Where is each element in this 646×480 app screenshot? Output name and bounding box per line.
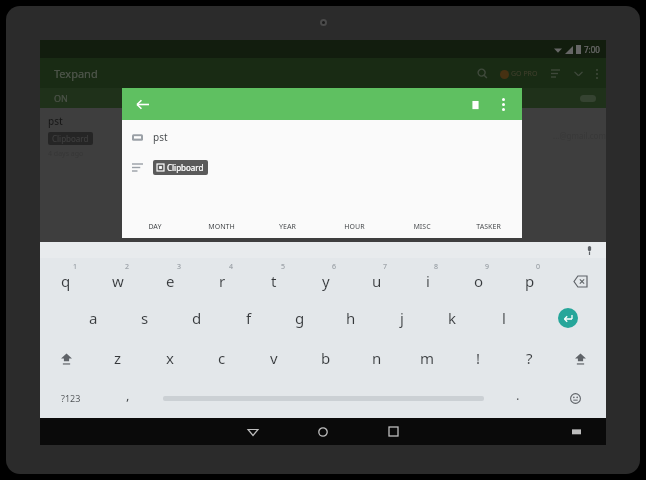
button[interactable]: 6: [300, 258, 351, 298]
staticText: pst: [48, 114, 63, 128]
staticText: n: [372, 348, 382, 368]
staticText: ,: [126, 386, 130, 404]
staticText: x: [166, 348, 174, 368]
staticText: TASKER: [476, 222, 501, 232]
staticText: 5: [281, 262, 286, 272]
button[interactable]: Back: [130, 92, 154, 116]
button[interactable]: Add phrase: [554, 399, 588, 433]
staticText: 7: [383, 262, 388, 272]
staticText: pst: [153, 130, 168, 144]
button[interactable]: YEAR: [254, 216, 321, 238]
button[interactable]: h: [325, 298, 376, 338]
staticText: DAY: [148, 222, 162, 232]
staticText: g: [295, 308, 305, 328]
button[interactable]: !: [453, 338, 504, 378]
staticText: YEAR: [279, 222, 296, 232]
button[interactable]: 1: [40, 258, 92, 298]
button[interactable]: TASKER: [455, 216, 522, 238]
staticText: 3: [177, 262, 182, 272]
staticText: MISC: [413, 222, 431, 232]
staticText: a: [89, 308, 98, 328]
button[interactable]: Space: [154, 378, 492, 418]
staticText: 9: [485, 262, 490, 272]
button[interactable]: z: [92, 338, 144, 378]
button[interactable]: g: [274, 298, 325, 338]
button[interactable]: v: [248, 338, 300, 378]
staticText: v: [270, 348, 278, 368]
button[interactable]: 9: [453, 258, 504, 298]
staticText: Clipboard: [167, 162, 204, 173]
staticText: p: [525, 271, 535, 291]
button[interactable]: 4: [196, 258, 248, 298]
button[interactable]: s: [119, 298, 171, 338]
staticText: e: [166, 271, 175, 291]
staticText: 6: [332, 262, 337, 272]
button[interactable]: Emoji: [544, 378, 606, 418]
button[interactable]: Shift: [40, 338, 92, 378]
button[interactable]: .: [492, 378, 544, 418]
staticText: k: [448, 308, 457, 328]
staticText: GO PRO: [511, 69, 538, 79]
button[interactable]: Enter: [529, 298, 606, 338]
button[interactable]: m: [402, 338, 453, 378]
button[interactable]: x: [144, 338, 196, 378]
button[interactable]: More options: [492, 93, 514, 115]
staticText: h: [346, 308, 356, 328]
staticText: 8: [434, 262, 439, 272]
staticText: 7:00: [584, 44, 600, 55]
button[interactable]: d: [171, 298, 223, 338]
button[interactable]: 5: [248, 258, 300, 298]
staticText: c: [218, 348, 226, 368]
staticText: 4: [229, 262, 234, 272]
button[interactable]: ,: [102, 378, 154, 418]
button[interactable]: 7: [351, 258, 402, 298]
staticText: ?123: [61, 392, 81, 404]
button[interactable]: Delete: [464, 93, 486, 115]
button[interactable]: n: [351, 338, 402, 378]
button[interactable]: 2: [92, 258, 144, 298]
button[interactable]: Hide keyboard: [568, 424, 584, 440]
button[interactable]: l: [478, 298, 529, 338]
button[interactable]: 8: [402, 258, 453, 298]
button[interactable]: k: [427, 298, 478, 338]
button[interactable]: ?: [504, 338, 555, 378]
staticText: .: [516, 386, 520, 404]
button[interactable]: Recent apps: [372, 418, 414, 445]
staticText: r: [219, 271, 226, 291]
button[interactable]: Shift: [555, 338, 606, 378]
staticText: MONTH: [208, 222, 235, 232]
staticText: l: [502, 308, 506, 328]
button[interactable]: b: [300, 338, 351, 378]
staticText: q: [61, 271, 71, 291]
staticText: 1: [73, 262, 78, 272]
staticText: s: [141, 308, 149, 328]
staticText: b: [321, 348, 331, 368]
button[interactable]: Back: [232, 418, 274, 445]
button[interactable]: MONTH: [188, 216, 254, 238]
staticText: 2: [125, 262, 130, 272]
button[interactable]: Clipboard: [153, 160, 208, 175]
button[interactable]: f: [223, 298, 274, 338]
button[interactable]: Home: [302, 418, 344, 445]
button[interactable]: c: [196, 338, 248, 378]
staticText: Clipboard: [52, 133, 89, 144]
staticText: u: [372, 271, 382, 291]
button[interactable]: 0: [504, 258, 555, 298]
button[interactable]: DAY: [122, 216, 188, 238]
button[interactable]: ?123: [40, 378, 102, 418]
staticText: m: [420, 348, 435, 368]
staticText: ON: [54, 92, 68, 104]
button[interactable]: a: [67, 298, 119, 338]
staticText: ?: [526, 348, 533, 368]
button[interactable]: j: [376, 298, 427, 338]
staticText: f: [246, 308, 252, 328]
staticText: o: [474, 271, 484, 291]
button[interactable]: HOUR: [321, 216, 388, 238]
button[interactable]: MISC: [388, 216, 455, 238]
staticText: t: [271, 271, 277, 291]
staticText: i: [426, 271, 430, 291]
button[interactable]: Backspace: [555, 258, 606, 298]
button[interactable]: 3: [144, 258, 196, 298]
